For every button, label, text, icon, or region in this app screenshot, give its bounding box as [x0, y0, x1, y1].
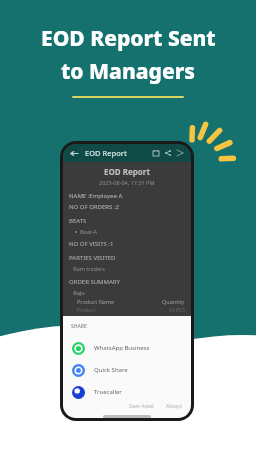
staticText: to Managers — [61, 57, 195, 86]
button[interactable]: Truecaller — [63, 381, 191, 403]
staticText: Quick Share — [94, 366, 128, 374]
staticText: ORDER SUMMARY — [69, 278, 120, 286]
staticText: NO OF VISITS :1 — [69, 240, 114, 248]
staticText: 2025-08-04, 17:31 PM — [99, 179, 155, 186]
staticText: SHARE — [71, 323, 87, 330]
staticText: Quantity — [162, 298, 185, 305]
staticText: Truecaller — [94, 388, 122, 396]
staticText: NO OF ORDERS :2 — [69, 203, 119, 211]
staticText: Always — [166, 403, 183, 410]
button[interactable]: Calendar — [150, 147, 162, 159]
button[interactable]: Share — [162, 147, 174, 159]
staticText: Save Asset — [129, 403, 154, 410]
staticText: PARTIES VISITED — [69, 254, 116, 262]
staticText: WhatsApp Business — [94, 344, 150, 352]
staticText: EOD Report Sent — [41, 24, 216, 53]
staticText: Product — [77, 307, 96, 312]
staticText: Product Name — [77, 298, 115, 305]
staticText: 10 PCS — [169, 307, 185, 312]
staticText: Beat-A — [80, 228, 98, 235]
button[interactable]: WhatsApp Business — [63, 337, 191, 359]
button[interactable]: Back — [68, 147, 80, 159]
staticText: EOD Report — [85, 148, 127, 158]
staticText: EOD Report — [104, 166, 150, 177]
button[interactable]: Quick Share — [63, 359, 191, 381]
staticText: Ram traders — [69, 265, 105, 272]
staticText: BEATS — [69, 217, 87, 225]
staticText: Raju — [69, 289, 85, 296]
button[interactable]: Send — [174, 147, 186, 159]
staticText: NAME :Employee A — [69, 192, 123, 200]
